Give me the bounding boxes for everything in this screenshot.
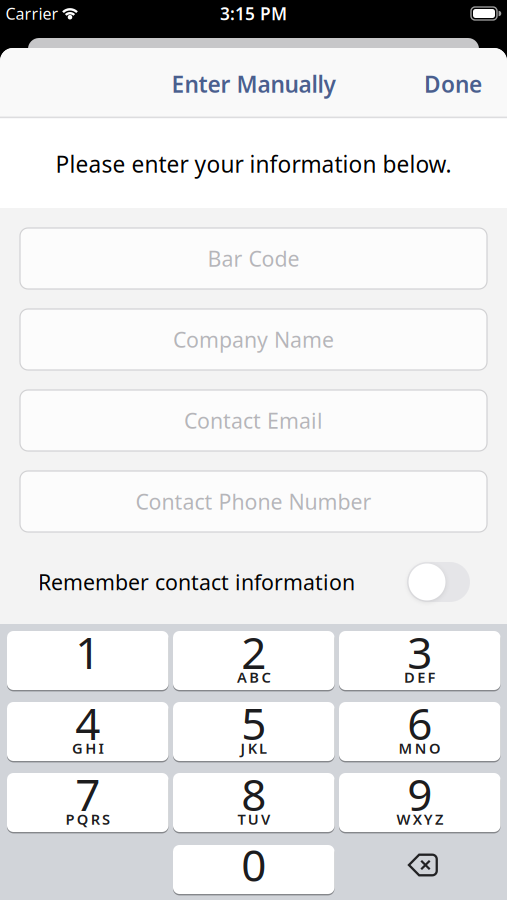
staticText: 9 bbox=[407, 765, 432, 823]
staticText: Contact Email bbox=[184, 406, 323, 435]
staticText: 1 bbox=[75, 623, 100, 681]
staticText: O bbox=[429, 738, 441, 758]
staticText: K bbox=[248, 738, 257, 758]
staticText: S bbox=[102, 809, 110, 829]
button[interactable]: 5 bbox=[173, 702, 334, 761]
staticText: Done bbox=[424, 69, 482, 99]
button[interactable]: 4 bbox=[7, 702, 168, 761]
staticText: 3 bbox=[407, 623, 432, 681]
button[interactable]: 3 bbox=[339, 631, 500, 690]
staticText: D bbox=[404, 667, 415, 687]
staticText: V bbox=[261, 809, 270, 829]
staticText: 0 bbox=[241, 835, 266, 894]
button[interactable]: Company Name bbox=[20, 309, 487, 370]
staticText: 6 bbox=[407, 694, 432, 752]
staticText: Contact Phone Number bbox=[135, 487, 371, 516]
staticText: W bbox=[396, 809, 410, 829]
button[interactable]: Done bbox=[414, 59, 492, 109]
button[interactable]: Contact Email bbox=[20, 390, 487, 451]
staticText: F bbox=[427, 667, 435, 687]
staticText: R bbox=[91, 809, 100, 829]
staticText: T bbox=[238, 809, 246, 829]
staticText: G bbox=[72, 738, 83, 758]
staticText: Bar Code bbox=[207, 244, 299, 273]
staticText: Carrier bbox=[5, 3, 58, 24]
button[interactable]: 8 bbox=[173, 773, 334, 832]
button[interactable]: 9 bbox=[339, 773, 500, 832]
staticText: Q bbox=[77, 809, 89, 829]
staticText: Remember contact information bbox=[38, 568, 355, 596]
staticText: Company Name bbox=[173, 325, 334, 354]
staticText: 7 bbox=[75, 765, 100, 823]
staticText: J bbox=[241, 738, 246, 758]
staticText: 8 bbox=[241, 765, 266, 823]
staticText: Y bbox=[424, 809, 433, 829]
button[interactable]: 1 bbox=[7, 631, 168, 690]
staticText: 5 bbox=[241, 694, 266, 752]
button[interactable]: 2 bbox=[173, 631, 334, 690]
button[interactable]: 7 bbox=[7, 773, 168, 832]
button[interactable]: Remember contact information bbox=[407, 562, 470, 602]
staticText: I bbox=[98, 738, 103, 758]
staticText: U bbox=[248, 809, 259, 829]
staticText: A bbox=[237, 667, 247, 687]
button[interactable]: 0 bbox=[173, 845, 334, 894]
staticText: B bbox=[249, 667, 259, 687]
button[interactable]: Delete bbox=[339, 845, 500, 894]
staticText: 2 bbox=[241, 623, 266, 681]
staticText: N bbox=[415, 738, 427, 758]
button[interactable]: 6 bbox=[339, 702, 500, 761]
staticText: X bbox=[413, 809, 422, 829]
button[interactable]: Bar Code bbox=[20, 228, 487, 289]
staticText: L bbox=[259, 738, 267, 758]
staticText: 3:15 PM bbox=[220, 2, 287, 25]
staticText: C bbox=[261, 667, 270, 687]
staticText: H bbox=[85, 738, 96, 758]
staticText: 4 bbox=[75, 694, 100, 752]
button[interactable]: Contact Phone Number bbox=[20, 471, 487, 532]
staticText: P bbox=[65, 809, 74, 829]
staticText: M bbox=[399, 738, 413, 758]
staticText: Please enter your information below. bbox=[55, 149, 451, 179]
staticText: Enter Manually bbox=[171, 69, 335, 99]
staticText: E bbox=[417, 667, 425, 687]
staticText: Z bbox=[435, 809, 443, 829]
